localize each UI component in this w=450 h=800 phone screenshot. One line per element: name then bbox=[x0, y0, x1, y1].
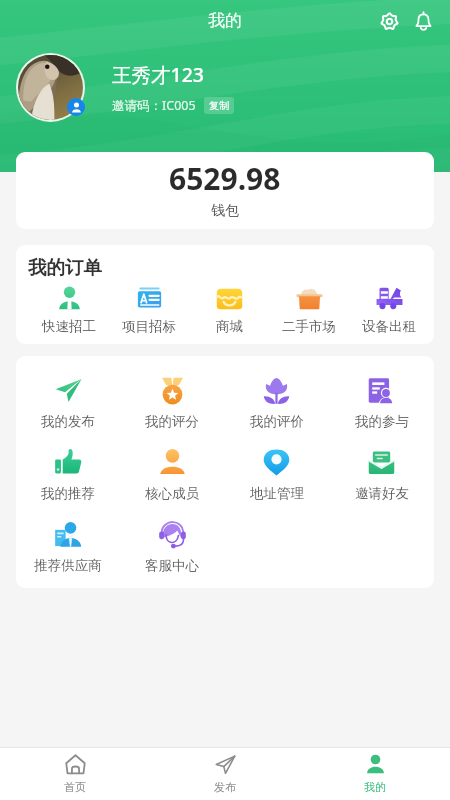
staticText: 发布 bbox=[214, 780, 236, 794]
button[interactable]: 二手市场 bbox=[269, 285, 349, 335]
button[interactable]: 复制 bbox=[204, 97, 234, 114]
button[interactable]: 地址管理 bbox=[224, 448, 329, 502]
button[interactable]: 我的 bbox=[300, 754, 450, 794]
button[interactable]: 首页 bbox=[0, 754, 150, 794]
button[interactable]: 我的推荐 bbox=[16, 448, 120, 502]
staticText: 6529.98 bbox=[169, 158, 281, 199]
button[interactable]: 核心成员 bbox=[120, 448, 224, 502]
staticText: 商城 bbox=[216, 318, 243, 335]
button[interactable]: 推荐供应商 bbox=[16, 520, 120, 574]
staticText: 王秀才123 bbox=[112, 61, 204, 88]
button[interactable]: 邀请好友 bbox=[329, 448, 434, 502]
staticText: 复制 bbox=[209, 99, 229, 112]
button[interactable]: 6529.98 bbox=[16, 152, 434, 229]
button[interactable]: Settings bbox=[372, 4, 406, 38]
staticText: 我的评分 bbox=[145, 413, 199, 430]
staticText: 我的发布 bbox=[41, 413, 95, 430]
button[interactable]: 商城 bbox=[189, 285, 269, 335]
staticText: 项目招标 bbox=[122, 318, 176, 335]
button[interactable]: Avatar bbox=[16, 53, 100, 137]
staticText: 我的评价 bbox=[250, 413, 304, 430]
staticText: 邀请好友 bbox=[355, 485, 409, 502]
staticText: 二手市场 bbox=[282, 318, 336, 335]
staticText: 核心成员 bbox=[145, 485, 199, 502]
button[interactable]: 设备出租 bbox=[349, 285, 429, 335]
staticText: 首页 bbox=[64, 780, 86, 794]
staticText: 我的订单 bbox=[28, 256, 102, 279]
button[interactable]: 快速招工 bbox=[29, 285, 109, 335]
staticText: 我的 bbox=[364, 780, 386, 794]
staticText: 我的 bbox=[208, 10, 242, 31]
button[interactable]: 项目招标 bbox=[109, 285, 189, 335]
button[interactable]: 客服中心 bbox=[120, 520, 224, 574]
staticText: 客服中心 bbox=[145, 557, 199, 574]
button[interactable]: 我的评分 bbox=[120, 376, 224, 430]
staticText: 钱包 bbox=[211, 202, 239, 220]
staticText: 设备出租 bbox=[362, 318, 416, 335]
button[interactable]: 发布 bbox=[150, 754, 300, 794]
staticText: 我的参与 bbox=[355, 413, 409, 430]
staticText: 我的推荐 bbox=[41, 485, 95, 502]
button[interactable]: Notifications bbox=[406, 4, 440, 38]
staticText: 地址管理 bbox=[250, 485, 304, 502]
button[interactable]: 我的参与 bbox=[329, 376, 434, 430]
staticText: 推荐供应商 bbox=[34, 557, 102, 574]
staticText: 邀请码：IC005 bbox=[112, 97, 196, 114]
button[interactable]: 我的发布 bbox=[16, 376, 120, 430]
staticText: 快速招工 bbox=[42, 318, 96, 335]
button[interactable]: 我的评价 bbox=[224, 376, 329, 430]
